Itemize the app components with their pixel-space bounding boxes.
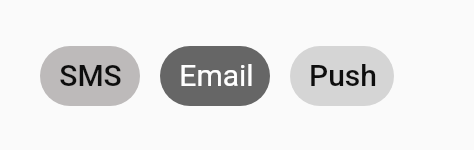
button[interactable]: SMS	[40, 46, 140, 106]
button[interactable]: Email	[160, 46, 270, 106]
staticText: SMS	[59, 58, 122, 93]
button[interactable]: Push	[290, 46, 394, 106]
staticText: Push	[309, 58, 377, 93]
staticText: Email	[179, 58, 254, 93]
